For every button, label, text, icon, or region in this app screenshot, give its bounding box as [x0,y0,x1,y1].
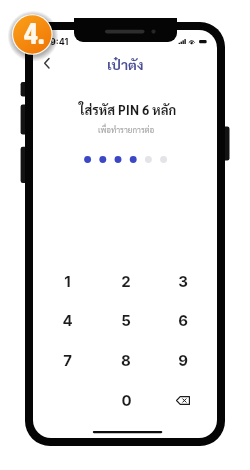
staticText: 5 [121,311,131,329]
staticText: 8 [121,351,131,369]
button[interactable]: 8 [102,342,150,378]
button[interactable]: Back [39,52,61,74]
button[interactable]: 3 [159,263,207,299]
button[interactable]: 5 [102,302,150,338]
staticText: 4. [24,16,44,50]
staticText: เป๋าตัง [107,55,144,73]
button[interactable]: 2 [102,263,150,299]
button[interactable]: 0 [102,382,150,418]
staticText: 6 [178,311,188,329]
staticText: เพื่อทำรายการต่อ [98,124,155,134]
button[interactable]: 6 [159,302,207,338]
staticText: 4 [62,311,73,329]
staticText: 9:41 [50,36,69,47]
button[interactable]: 1 [43,263,91,299]
staticText: 0 [121,391,132,409]
button[interactable]: 4 [43,302,91,338]
staticText: 2 [121,272,131,290]
staticText: 3 [178,272,188,290]
staticText: 1 [64,272,71,290]
staticText: 9 [178,351,188,369]
button[interactable]: 9 [159,342,207,378]
button[interactable]: 7 [43,342,91,378]
staticText: 7 [63,351,72,369]
button[interactable]: Delete [159,382,207,418]
staticText: ใส่รหัส PIN 6 หลัก [79,101,177,118]
